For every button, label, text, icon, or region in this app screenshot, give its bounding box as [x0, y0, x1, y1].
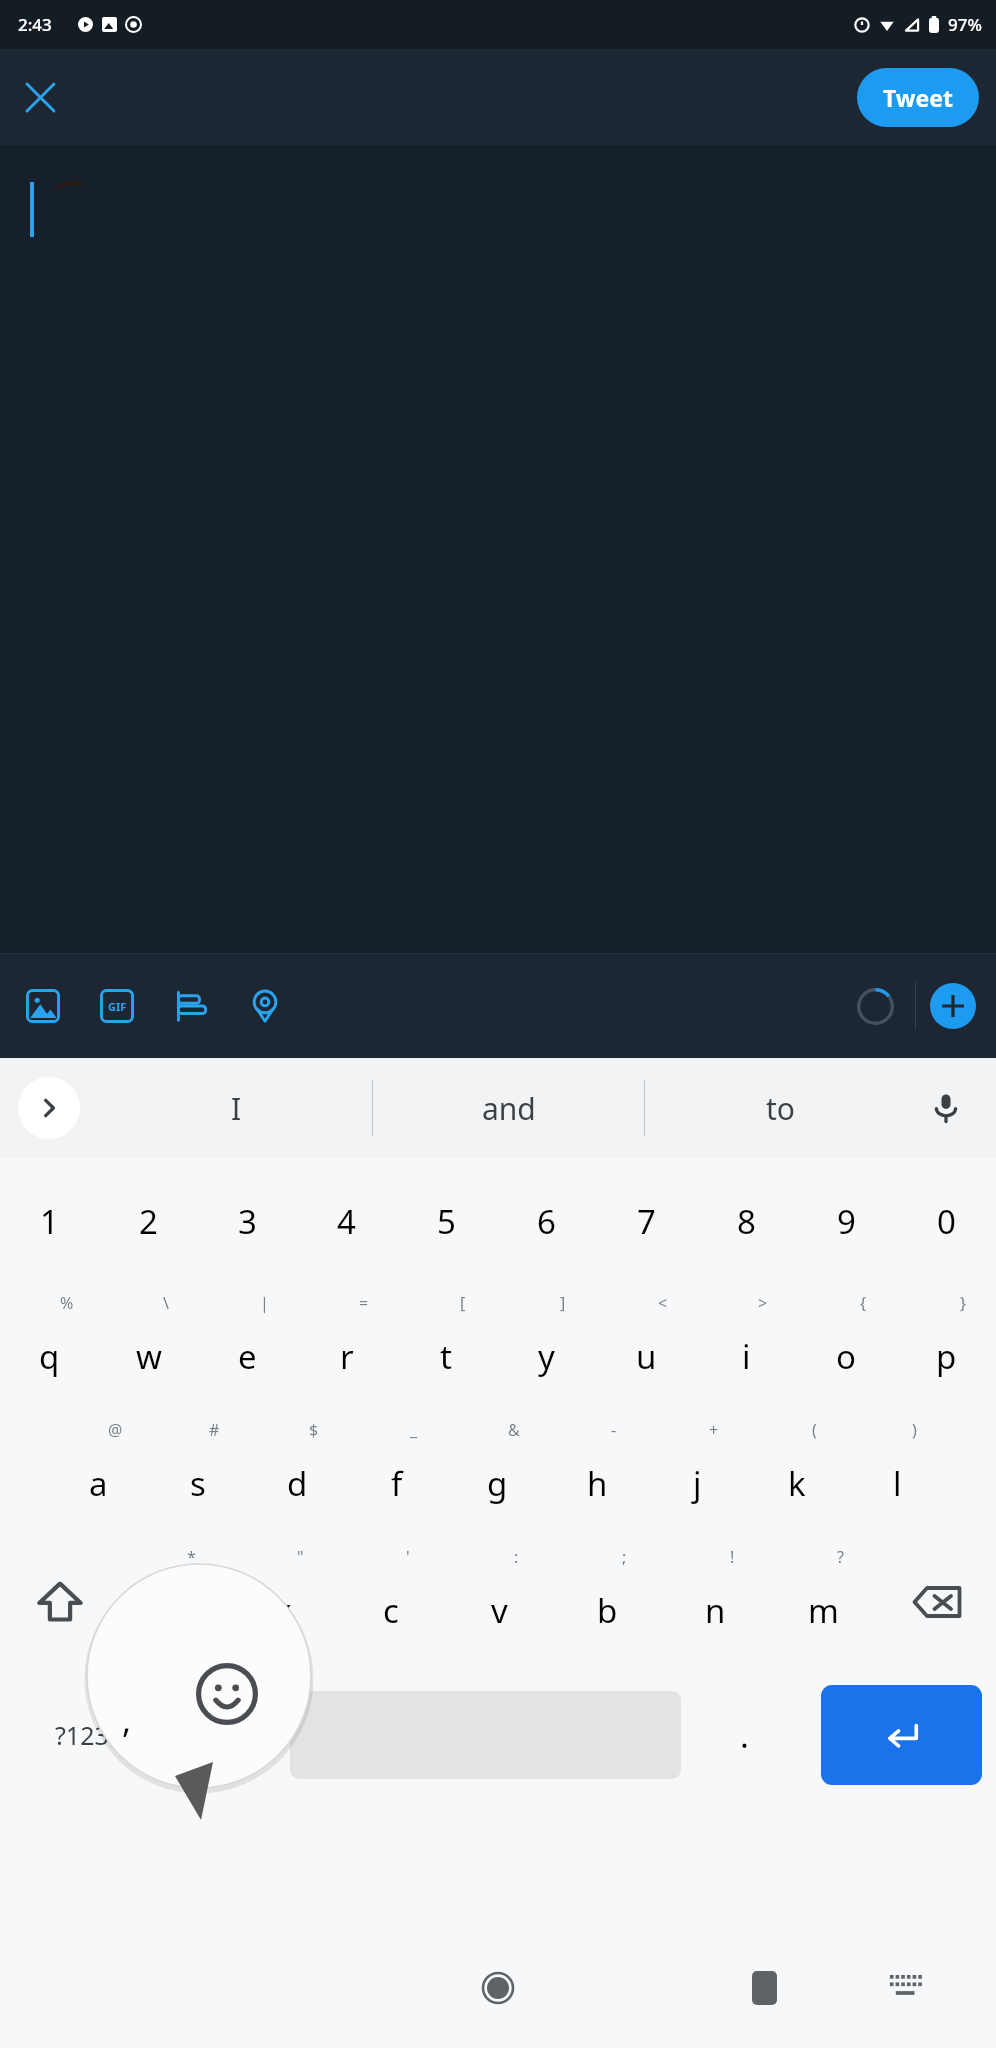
button[interactable]: 9: [796, 1158, 896, 1284]
button[interactable]: ": [229, 1538, 337, 1665]
button[interactable]: }: [896, 1284, 996, 1411]
button[interactable]: *: [120, 1538, 229, 1665]
button[interactable]: !: [661, 1538, 769, 1665]
staticText: *: [187, 1546, 196, 1568]
button[interactable]: Add location: [228, 969, 302, 1043]
button[interactable]: ]: [496, 1284, 596, 1411]
button[interactable]: Shift: [0, 1538, 120, 1665]
button[interactable]: Enter: [821, 1685, 982, 1785]
button[interactable]: ;: [553, 1538, 661, 1665]
button[interactable]: 2: [99, 1158, 198, 1284]
button[interactable]: Home: [466, 1956, 530, 2020]
staticText: w: [136, 1334, 162, 1379]
button[interactable]: _: [347, 1411, 447, 1538]
staticText: m: [808, 1588, 839, 1633]
staticText: <: [658, 1292, 668, 1314]
button[interactable]: Backspace: [877, 1538, 996, 1665]
staticText: \: [163, 1292, 169, 1314]
button[interactable]: Add poll: [154, 969, 228, 1043]
staticText: d: [287, 1461, 308, 1506]
button[interactable]: [: [396, 1284, 496, 1411]
button[interactable]: (: [747, 1411, 847, 1538]
button[interactable]: :: [445, 1538, 553, 1665]
staticText: %: [60, 1292, 74, 1314]
staticText: 7: [637, 1199, 656, 1244]
button[interactable]: 5: [396, 1158, 496, 1284]
staticText: y: [538, 1334, 555, 1379]
staticText: (: [812, 1419, 817, 1441]
staticText: 9: [837, 1199, 856, 1244]
staticText: 8: [737, 1199, 756, 1244]
staticText: +: [709, 1419, 719, 1441]
staticText: >: [758, 1292, 768, 1314]
staticText: 5: [437, 1199, 456, 1244]
button[interactable]: ': [337, 1538, 445, 1665]
button[interactable]: Hide keyboard: [874, 1956, 938, 2020]
button[interactable]: \: [99, 1284, 198, 1411]
button[interactable]: &: [447, 1411, 547, 1538]
button[interactable]: {: [796, 1284, 896, 1411]
button[interactable]: 4: [297, 1158, 396, 1284]
staticText: v: [491, 1588, 508, 1633]
staticText: u: [636, 1334, 657, 1379]
button[interactable]: 0: [896, 1158, 996, 1284]
button[interactable]: #: [148, 1411, 247, 1538]
staticText: 3: [238, 1199, 257, 1244]
button[interactable]: ?123: [0, 1665, 164, 1805]
button[interactable]: 6: [496, 1158, 596, 1284]
button[interactable]: -: [547, 1411, 647, 1538]
button[interactable]: Expand toolbar: [18, 1077, 80, 1139]
button[interactable]: 3: [198, 1158, 297, 1284]
staticText: $: [309, 1419, 319, 1441]
staticText: GIF: [108, 999, 127, 1014]
button[interactable]: to: [645, 1058, 916, 1158]
button[interactable]: ?: [769, 1538, 877, 1665]
button[interactable]: 8: [696, 1158, 796, 1284]
button[interactable]: Tweet: [857, 68, 979, 127]
staticText: @: [108, 1419, 123, 1441]
button[interactable]: Add tweet: [930, 983, 976, 1029]
button[interactable]: Add photo: [6, 969, 80, 1043]
button[interactable]: Close: [12, 69, 68, 125]
button[interactable]: @: [49, 1411, 148, 1538]
staticText: 0: [937, 1199, 956, 1244]
button[interactable]: %: [0, 1284, 99, 1411]
button[interactable]: <: [596, 1284, 696, 1411]
button[interactable]: =: [297, 1284, 396, 1411]
staticText: ]: [560, 1292, 566, 1314]
staticText: :: [514, 1546, 519, 1568]
staticText: =: [359, 1292, 369, 1314]
staticText: g: [487, 1461, 508, 1506]
staticText: c: [383, 1588, 399, 1633]
staticText: j: [693, 1461, 702, 1506]
staticText: s: [190, 1461, 206, 1506]
staticText: a: [89, 1461, 108, 1506]
button[interactable]: +: [647, 1411, 747, 1538]
button[interactable]: Voice input: [918, 1080, 974, 1136]
button[interactable]: Recents: [732, 1956, 796, 2020]
staticText: 1: [40, 1199, 59, 1244]
button[interactable]: Add GIF: [80, 969, 154, 1043]
button[interactable]: |: [198, 1284, 297, 1411]
staticText: 2:43: [18, 13, 52, 36]
button[interactable]: >: [696, 1284, 796, 1411]
staticText: ): [912, 1419, 917, 1441]
button[interactable]: Space: [290, 1691, 681, 1779]
button[interactable]: Character count: [847, 978, 903, 1034]
button[interactable]: ): [847, 1411, 947, 1538]
staticText: ,: [122, 1697, 132, 1743]
staticText: h: [587, 1461, 608, 1506]
staticText: !: [730, 1546, 735, 1568]
button[interactable]: I: [100, 1058, 372, 1158]
button[interactable]: .: [681, 1665, 807, 1805]
staticText: p: [936, 1334, 957, 1379]
button[interactable]: $: [247, 1411, 347, 1538]
staticText: k: [788, 1461, 806, 1506]
button[interactable]: 7: [596, 1158, 696, 1284]
staticText: ': [406, 1546, 410, 1568]
button[interactable]: and: [373, 1058, 644, 1158]
staticText: to: [766, 1088, 795, 1129]
button[interactable]: 1: [0, 1158, 99, 1284]
button[interactable]: Emoji: [164, 1665, 290, 1805]
